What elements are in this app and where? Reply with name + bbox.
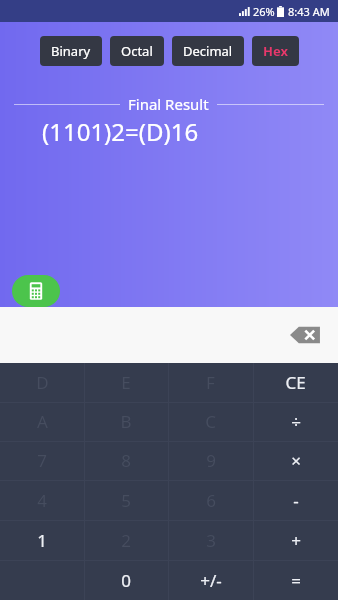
staticText: 0 xyxy=(121,569,131,592)
button[interactable]: ÷ xyxy=(253,402,338,441)
button[interactable]: 1 xyxy=(0,520,84,560)
button[interactable]: × xyxy=(253,441,338,480)
staticText: 4 xyxy=(37,489,47,512)
staticText: 9 xyxy=(206,449,216,472)
button[interactable]: Calculator xyxy=(12,275,60,307)
staticText: Hex xyxy=(263,42,288,60)
staticText: E xyxy=(121,371,131,394)
staticText: 7 xyxy=(37,449,47,472)
staticText: B xyxy=(120,410,132,433)
staticText: (1101)2=(D)16 xyxy=(42,115,199,148)
button[interactable]: Hex xyxy=(252,36,299,66)
button[interactable]: - xyxy=(253,480,338,520)
button[interactable]: + xyxy=(253,520,338,560)
staticText: 3 xyxy=(206,529,216,552)
button[interactable]: 0 xyxy=(84,560,168,600)
staticText: Octal xyxy=(121,42,153,60)
staticText: - xyxy=(293,489,299,512)
staticText: +/- xyxy=(200,569,222,592)
staticText: D xyxy=(36,371,49,394)
staticText: 8 xyxy=(121,449,131,472)
button[interactable]: CE xyxy=(253,363,338,402)
button[interactable]: +/- xyxy=(168,560,253,600)
staticText: ÷ xyxy=(291,410,301,433)
staticText: + xyxy=(291,529,301,552)
staticText: = xyxy=(291,569,301,592)
staticText: 1 xyxy=(37,529,47,552)
staticText: × xyxy=(291,449,301,472)
staticText: C xyxy=(205,410,216,433)
button[interactable]: Octal xyxy=(110,36,164,66)
staticText: 6 xyxy=(206,489,216,512)
staticText: 5 xyxy=(121,489,131,512)
button[interactable]: Decimal xyxy=(172,36,244,66)
staticText: A xyxy=(37,410,48,433)
button[interactable]: Binary xyxy=(40,36,102,66)
staticText: 26% xyxy=(253,4,275,19)
staticText: 8:43 AM xyxy=(288,4,330,19)
staticText: CE xyxy=(285,371,306,394)
staticText: Binary xyxy=(51,42,91,60)
button[interactable]: Backspace xyxy=(290,322,324,348)
button[interactable]: = xyxy=(253,560,338,600)
staticText: 2 xyxy=(121,529,131,552)
staticText: F xyxy=(206,371,215,394)
staticText: Decimal xyxy=(183,42,233,60)
staticText: Final Result xyxy=(128,94,209,114)
